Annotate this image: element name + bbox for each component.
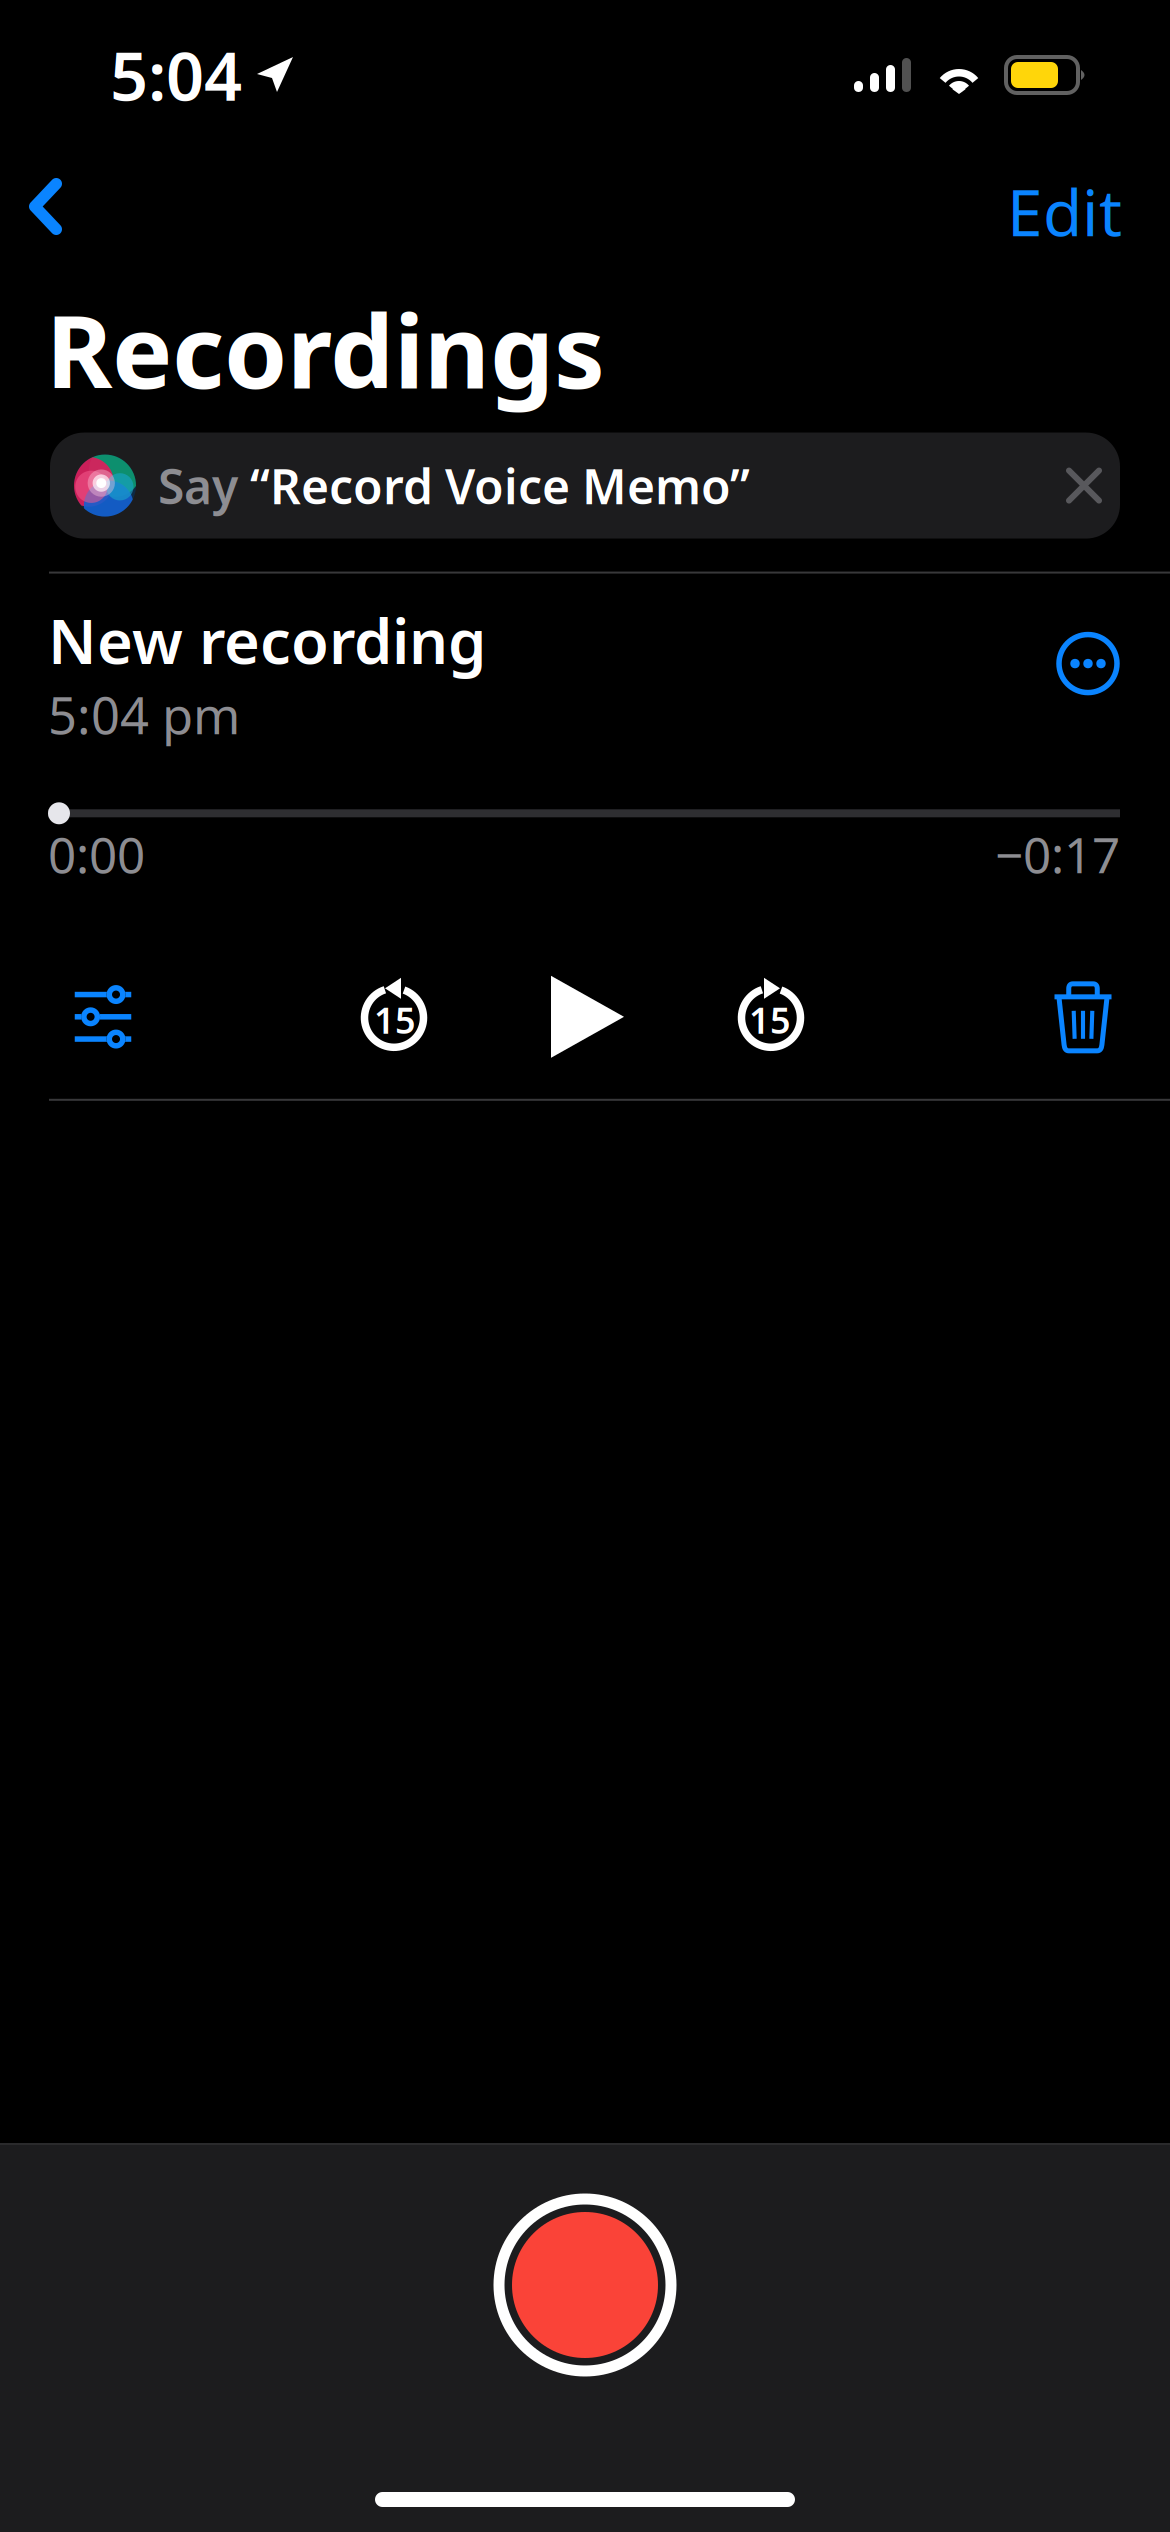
button[interactable]: Delete	[1052, 981, 1114, 1053]
button[interactable]: Playback settings	[72, 990, 134, 1044]
staticText: New recording	[48, 600, 486, 681]
button[interactable]: Back	[0, 150, 96, 235]
button[interactable]: Edit	[1007, 150, 1170, 254]
staticText: 15	[374, 996, 416, 1044]
staticText: Edit	[1007, 169, 1122, 254]
staticText: 5:04	[110, 31, 242, 119]
staticText: −0:17	[995, 821, 1120, 887]
staticText: “Record Voice Memo”	[250, 454, 750, 517]
staticText: Recordings	[46, 282, 605, 417]
button[interactable]: Play	[551, 976, 624, 1058]
button[interactable]: Skip forward 15 seconds	[736, 978, 804, 1056]
button[interactable]: Record	[493, 2193, 677, 2377]
staticText: Say	[158, 454, 250, 517]
staticText: 15	[749, 996, 791, 1044]
staticText: 0:00	[48, 821, 145, 887]
button[interactable]: More options	[1056, 600, 1120, 696]
button[interactable]: Skip back 15 seconds	[361, 978, 429, 1056]
staticText: 5:04 pm	[48, 681, 240, 748]
button[interactable]: Say	[50, 433, 1120, 539]
